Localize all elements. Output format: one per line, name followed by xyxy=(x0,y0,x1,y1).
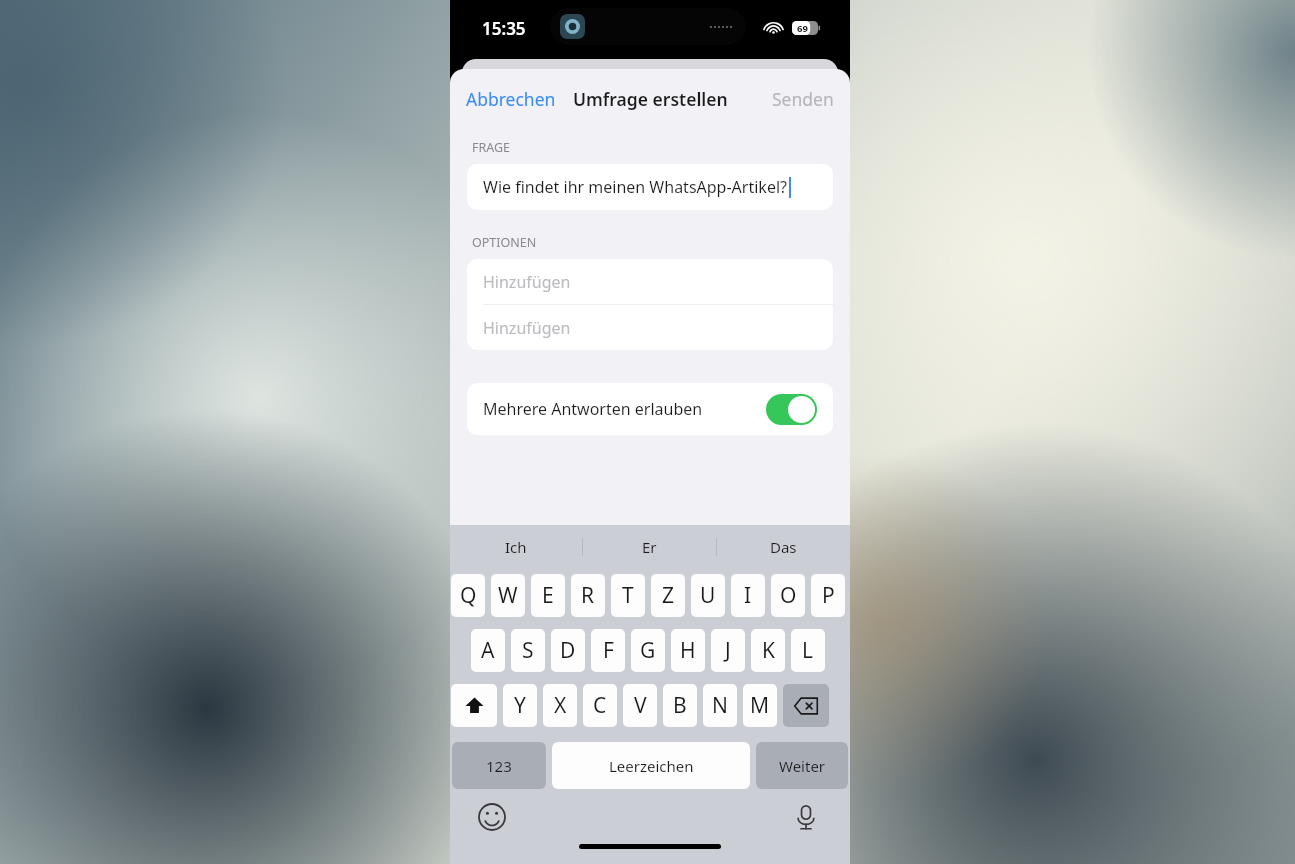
button[interactable]: Umschalten xyxy=(451,684,497,727)
staticText: 15:35 xyxy=(482,17,526,40)
button[interactable]: G xyxy=(631,629,665,672)
staticText: Abbrechen xyxy=(466,87,556,111)
button[interactable]: T xyxy=(611,574,645,617)
staticText: 69 xyxy=(797,22,808,35)
button[interactable]: X xyxy=(543,684,577,727)
button[interactable]: Abbrechen xyxy=(450,79,572,119)
button[interactable]: R xyxy=(571,574,605,617)
button[interactable]: D xyxy=(551,629,585,672)
button[interactable]: Leerzeichen xyxy=(552,742,750,789)
staticText: L xyxy=(802,636,814,665)
staticText: I xyxy=(744,581,752,610)
button[interactable]: 123 xyxy=(452,742,546,789)
staticText: R xyxy=(581,581,595,610)
button[interactable]: O xyxy=(771,574,805,617)
button[interactable]: Y xyxy=(503,684,537,727)
staticText: B xyxy=(673,691,687,720)
staticText: N xyxy=(712,691,728,720)
button[interactable]: E xyxy=(531,574,565,617)
button[interactable]: I xyxy=(731,574,765,617)
staticText: Ich xyxy=(505,537,527,557)
staticText: Leerzeichen xyxy=(609,756,694,776)
button[interactable]: B xyxy=(663,684,697,727)
staticText: G xyxy=(640,636,656,665)
staticText: D xyxy=(560,636,576,665)
button[interactable]: Das xyxy=(717,525,850,568)
button[interactable]: Diktieren xyxy=(792,803,820,831)
button[interactable]: Mehrere Antworten erlauben xyxy=(467,383,833,435)
button[interactable]: Löschen xyxy=(783,684,829,727)
button[interactable]: Wie findet ihr meinen WhatsApp-Artikel? xyxy=(467,164,833,210)
button[interactable]: Senden xyxy=(756,79,850,119)
button[interactable]: A xyxy=(471,629,505,672)
button[interactable]: H xyxy=(671,629,705,672)
staticText: M xyxy=(750,691,770,720)
staticText: 123 xyxy=(486,756,512,776)
staticText: Das xyxy=(770,537,797,557)
button[interactable]: C xyxy=(583,684,617,727)
staticText: Umfrage erstellen xyxy=(573,87,728,111)
staticText: E xyxy=(542,581,554,610)
button[interactable]: L xyxy=(791,629,825,672)
button[interactable]: K xyxy=(751,629,785,672)
button[interactable]: Er xyxy=(583,525,716,568)
button[interactable]: S xyxy=(511,629,545,672)
staticText: Y xyxy=(514,691,526,720)
staticText: K xyxy=(762,636,775,665)
staticText: Wie findet ihr meinen WhatsApp-Artikel? xyxy=(483,176,787,198)
button[interactable]: P xyxy=(811,574,845,617)
staticText: F xyxy=(603,636,614,665)
button[interactable]: U xyxy=(691,574,725,617)
button[interactable]: Emoji xyxy=(478,803,506,831)
button[interactable]: Q xyxy=(451,574,485,617)
staticText: U xyxy=(700,581,716,610)
button[interactable]: J xyxy=(711,629,745,672)
staticText: Weiter xyxy=(779,756,826,776)
staticText: X xyxy=(554,691,567,720)
button[interactable]: F xyxy=(591,629,625,672)
button[interactable]: Ich xyxy=(450,525,582,568)
staticText: P xyxy=(822,581,835,610)
button[interactable]: Hinzufügen xyxy=(467,259,833,304)
button[interactable]: Z xyxy=(651,574,685,617)
button[interactable]: Weiter xyxy=(756,742,848,789)
staticText: T xyxy=(622,581,634,610)
staticText: OPTIONEN xyxy=(472,234,537,251)
button[interactable]: V xyxy=(623,684,657,727)
staticText: J xyxy=(725,636,731,665)
button[interactable]: N xyxy=(703,684,737,727)
button[interactable]: Hinzufügen xyxy=(467,305,833,350)
staticText: Hinzufügen xyxy=(483,317,571,339)
staticText: C xyxy=(593,691,607,720)
staticText: Q xyxy=(460,581,477,610)
button[interactable]: W xyxy=(491,574,525,617)
staticText: FRAGE xyxy=(472,139,511,156)
staticText: V xyxy=(634,691,647,720)
staticText: Er xyxy=(642,537,657,557)
staticText: Senden xyxy=(772,87,834,111)
staticText: Hinzufügen xyxy=(483,271,571,293)
button[interactable]: M xyxy=(743,684,777,727)
staticText: H xyxy=(680,636,696,665)
staticText: Mehrere Antworten erlauben xyxy=(483,398,703,420)
staticText: A xyxy=(481,636,495,665)
staticText: Z xyxy=(662,581,675,610)
staticText: W xyxy=(498,581,518,610)
staticText: O xyxy=(780,581,797,610)
staticText: S xyxy=(522,636,534,665)
